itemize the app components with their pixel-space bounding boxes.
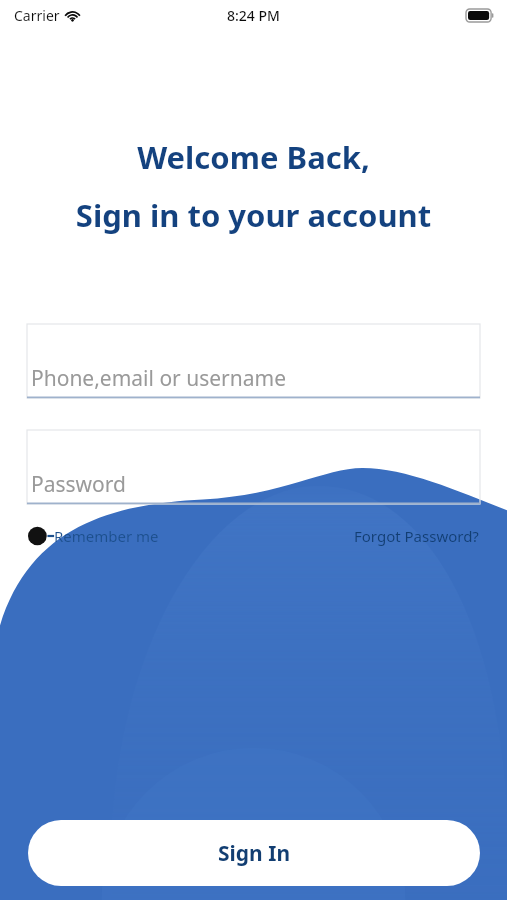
staticText: Password [31, 470, 126, 499]
staticText: Sign In [218, 839, 291, 868]
button[interactable]: Remember me [28, 522, 159, 550]
staticText: Forgot Password? [354, 526, 479, 546]
staticText: Welcome Back, [0, 136, 507, 178]
staticText: Remember me [54, 526, 159, 546]
staticText: Carrier [14, 6, 60, 25]
button[interactable]: Password [27, 430, 480, 504]
staticText: Sign in to your account [0, 194, 507, 236]
button[interactable]: Forgot Password? [354, 522, 479, 550]
staticText: 8:24 PM [227, 6, 280, 25]
button[interactable]: Phone,email or username [27, 324, 480, 398]
staticText: Phone,email or username [31, 364, 287, 393]
button[interactable]: Sign In [28, 820, 480, 886]
